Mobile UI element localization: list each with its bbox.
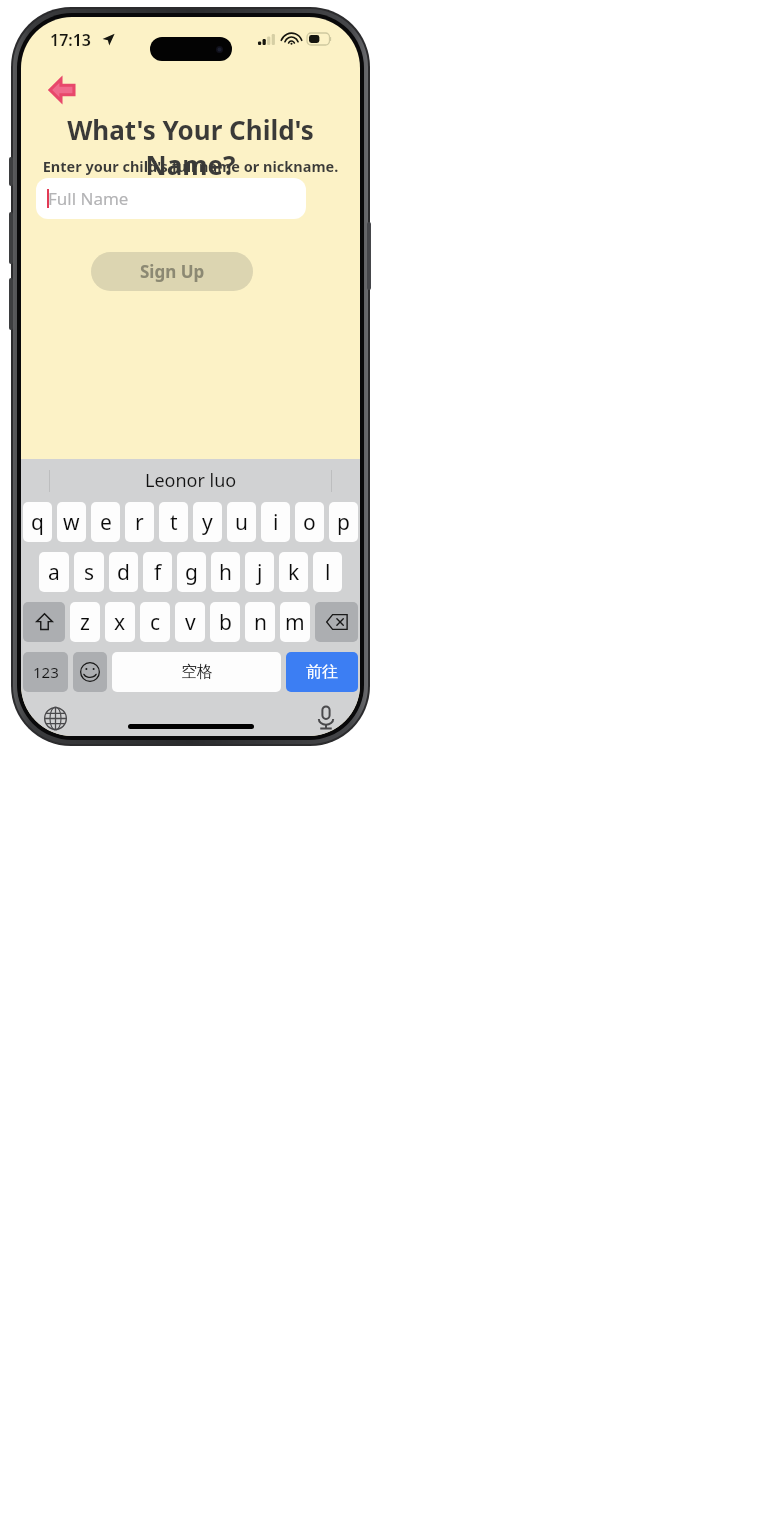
button[interactable]: 123 xyxy=(23,652,68,692)
button[interactable]: s xyxy=(74,552,104,592)
staticText: b xyxy=(219,608,232,637)
button[interactable]: Back xyxy=(42,70,82,110)
button[interactable]: o xyxy=(295,502,324,542)
staticText: u xyxy=(235,508,248,537)
button[interactable]: Emoji xyxy=(73,652,107,692)
button[interactable]: Backspace xyxy=(315,602,358,642)
staticText: j xyxy=(257,558,263,587)
staticText: 前往 xyxy=(306,662,338,682)
button[interactable]: y xyxy=(193,502,222,542)
button[interactable]: g xyxy=(177,552,206,592)
button[interactable]: u xyxy=(227,502,256,542)
button[interactable]: Full Name xyxy=(36,178,306,219)
staticText: x xyxy=(114,608,126,637)
staticText: n xyxy=(254,608,267,637)
button[interactable]: 前往 xyxy=(286,652,358,692)
staticText: k xyxy=(288,558,300,587)
button[interactable]: v xyxy=(175,602,205,642)
staticText: 123 xyxy=(33,662,59,682)
button[interactable]: Shift xyxy=(23,602,65,642)
button[interactable]: a xyxy=(39,552,69,592)
staticText: y xyxy=(202,508,213,537)
staticText: Full Name xyxy=(48,187,129,210)
staticText: g xyxy=(185,558,198,587)
staticText: a xyxy=(48,558,60,587)
staticText: q xyxy=(31,508,44,537)
button[interactable]: Sign Up xyxy=(91,252,253,291)
button[interactable]: c xyxy=(140,602,170,642)
button[interactable]: k xyxy=(279,552,308,592)
button[interactable]: i xyxy=(261,502,290,542)
staticText: What's Your Child's Name? xyxy=(21,112,360,182)
staticText: s xyxy=(84,558,95,587)
staticText: Enter your child's full name or nickname… xyxy=(21,156,360,176)
button[interactable]: d xyxy=(109,552,138,592)
staticText: i xyxy=(273,508,279,537)
button[interactable]: l xyxy=(313,552,342,592)
staticText: l xyxy=(325,558,331,587)
button[interactable]: m xyxy=(280,602,310,642)
button[interactable]: p xyxy=(329,502,358,542)
button[interactable]: r xyxy=(125,502,154,542)
staticText: e xyxy=(100,508,112,537)
button[interactable]: Dictation xyxy=(308,700,344,736)
staticText: r xyxy=(135,508,144,537)
staticText: 空格 xyxy=(181,662,213,682)
button[interactable]: e xyxy=(91,502,120,542)
button[interactable]: n xyxy=(245,602,275,642)
button[interactable]: q xyxy=(23,502,52,542)
staticText: m xyxy=(285,608,305,637)
staticText: t xyxy=(170,508,178,537)
button[interactable]: h xyxy=(211,552,240,592)
staticText: d xyxy=(117,558,130,587)
button[interactable]: t xyxy=(159,502,188,542)
staticText: p xyxy=(337,508,350,537)
staticText: h xyxy=(219,558,232,587)
button[interactable]: Leonor luo xyxy=(145,468,237,493)
staticText: z xyxy=(80,608,90,637)
button[interactable]: z xyxy=(70,602,100,642)
staticText: c xyxy=(150,608,161,637)
button[interactable]: 空格 xyxy=(112,652,281,692)
button[interactable]: j xyxy=(245,552,274,592)
button[interactable]: x xyxy=(105,602,135,642)
staticText: f xyxy=(154,558,162,587)
staticText: v xyxy=(185,608,196,637)
button[interactable]: w xyxy=(57,502,86,542)
staticText: 17:13 xyxy=(50,29,92,51)
button[interactable]: f xyxy=(143,552,172,592)
button[interactable]: b xyxy=(210,602,240,642)
staticText: Sign Up xyxy=(140,260,205,283)
button[interactable]: Switch keyboard xyxy=(37,700,73,736)
staticText: w xyxy=(63,508,80,537)
staticText: o xyxy=(303,508,316,537)
